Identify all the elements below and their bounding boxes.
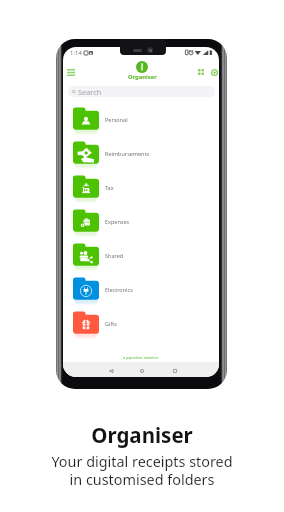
staticText: Organiser [128,73,157,81]
button[interactable]: Reimbursements [63,136,219,170]
button[interactable]: Tax [63,170,219,204]
staticText: Your digital receipts stored in customis… [51,452,233,489]
staticText: Gifts [105,320,117,327]
staticText: 1:14 [70,49,82,57]
staticText: a paperless initiative [123,355,159,360]
staticText: Electronics [105,286,133,293]
button[interactable]: Recents [168,364,182,377]
button[interactable]: Search [68,86,215,97]
staticText: Shared [105,252,124,259]
staticText: Search [78,87,102,97]
button[interactable]: Gifts [63,306,219,340]
button[interactable]: Personal [63,102,219,136]
button[interactable]: Electronics [63,272,219,306]
button[interactable]: Settings [206,64,219,80]
button[interactable]: Shared [63,238,219,272]
button[interactable]: Menu [63,64,79,80]
button[interactable]: Back [104,364,118,377]
button[interactable]: Home [135,364,149,377]
button[interactable]: Grid view [193,64,209,80]
staticText: Expenses [105,218,130,225]
staticText: Organiser [91,421,193,449]
staticText: Tax [105,184,114,191]
staticText: Personal [105,116,128,123]
staticText: Reimbursements [105,150,150,157]
button[interactable]: Expenses [63,204,219,238]
